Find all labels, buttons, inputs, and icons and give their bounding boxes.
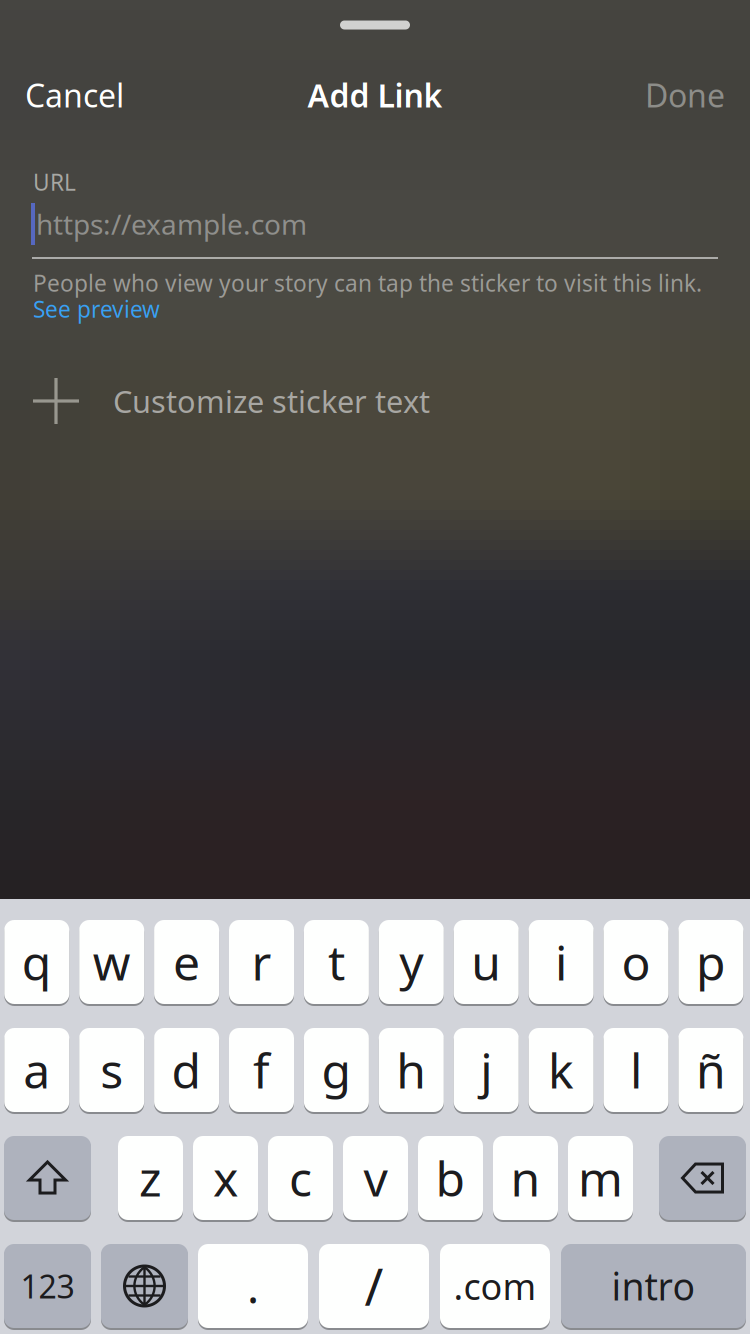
staticText: y [399,930,423,994]
button[interactable]: z [118,1135,183,1221]
button[interactable]: d [154,1027,219,1113]
button[interactable]: r [229,919,294,1005]
button[interactable]: Done [645,74,725,116]
button[interactable]: y [379,919,444,1005]
button[interactable]: b [418,1135,483,1221]
button[interactable]: v [343,1135,408,1221]
staticText: m [578,1146,623,1210]
staticText: s [100,1038,123,1102]
staticText: Customize sticker text [113,381,430,421]
button[interactable]: / [319,1243,429,1329]
button[interactable]: u [454,919,519,1005]
staticText: g [321,1038,351,1102]
staticText: https://example.com [36,205,307,243]
staticText: c [289,1146,312,1210]
button[interactable]: h [379,1027,444,1113]
button[interactable]: 123 [4,1243,91,1329]
button[interactable]: intro [561,1243,746,1329]
staticText: j [480,1038,492,1102]
button[interactable]: k [529,1027,594,1113]
staticText: Cancel [25,74,124,116]
button[interactable]: .com [440,1243,550,1329]
staticText: People who view your story can tap the s… [33,268,702,298]
button[interactable]: t [304,919,369,1005]
button[interactable]: Next keyboard [101,1243,188,1329]
staticText: intro [611,1261,695,1311]
button[interactable]: i [529,919,594,1005]
button[interactable]: c [268,1135,333,1221]
staticText: v [363,1146,387,1210]
staticText: q [22,930,52,994]
staticText: t [328,930,345,994]
staticText: k [548,1038,574,1102]
staticText: d [172,1038,202,1102]
staticText: 123 [20,1265,74,1307]
staticText: h [396,1038,426,1102]
button[interactable]: ñ [678,1027,743,1113]
button[interactable]: g [304,1027,369,1113]
button[interactable]: . [198,1243,308,1329]
staticText: . [247,1256,259,1316]
staticText: a [23,1038,50,1102]
button[interactable]: f [229,1027,294,1113]
staticText: w [93,930,131,994]
staticText: x [213,1146,238,1210]
button[interactable]: Cancel [25,74,124,116]
button[interactable]: m [568,1135,633,1221]
button[interactable]: p [678,919,743,1005]
staticText: .com [453,1262,536,1310]
button[interactable]: e [154,919,219,1005]
button[interactable]: Customize sticker text [33,378,733,424]
button[interactable]: See preview [33,294,160,324]
button[interactable]: q [4,919,69,1005]
button[interactable]: n [493,1135,558,1221]
staticText: i [555,930,567,994]
staticText: b [435,1146,465,1210]
button[interactable]: l [603,1027,668,1113]
staticText: URL [33,167,76,197]
staticText: l [630,1038,642,1102]
staticText: ñ [696,1038,726,1102]
staticText: f [253,1038,270,1102]
button[interactable]: URL [31,203,719,245]
button[interactable]: w [79,919,144,1005]
button[interactable]: j [454,1027,519,1113]
staticText: / [364,1252,383,1320]
staticText: n [510,1146,540,1210]
button[interactable]: s [79,1027,144,1113]
staticText: o [621,930,650,994]
button[interactable]: o [603,919,668,1005]
button[interactable]: a [4,1027,69,1113]
button[interactable]: x [193,1135,258,1221]
staticText: p [696,930,726,994]
button[interactable]: Shift [4,1135,91,1221]
staticText: Add Link [307,74,442,116]
button[interactable]: Delete [659,1135,746,1221]
staticText: Done [645,74,725,116]
staticText: u [471,930,501,994]
staticText: See preview [33,294,160,324]
staticText: e [173,930,200,994]
staticText: z [139,1146,162,1210]
staticText: r [251,930,271,994]
